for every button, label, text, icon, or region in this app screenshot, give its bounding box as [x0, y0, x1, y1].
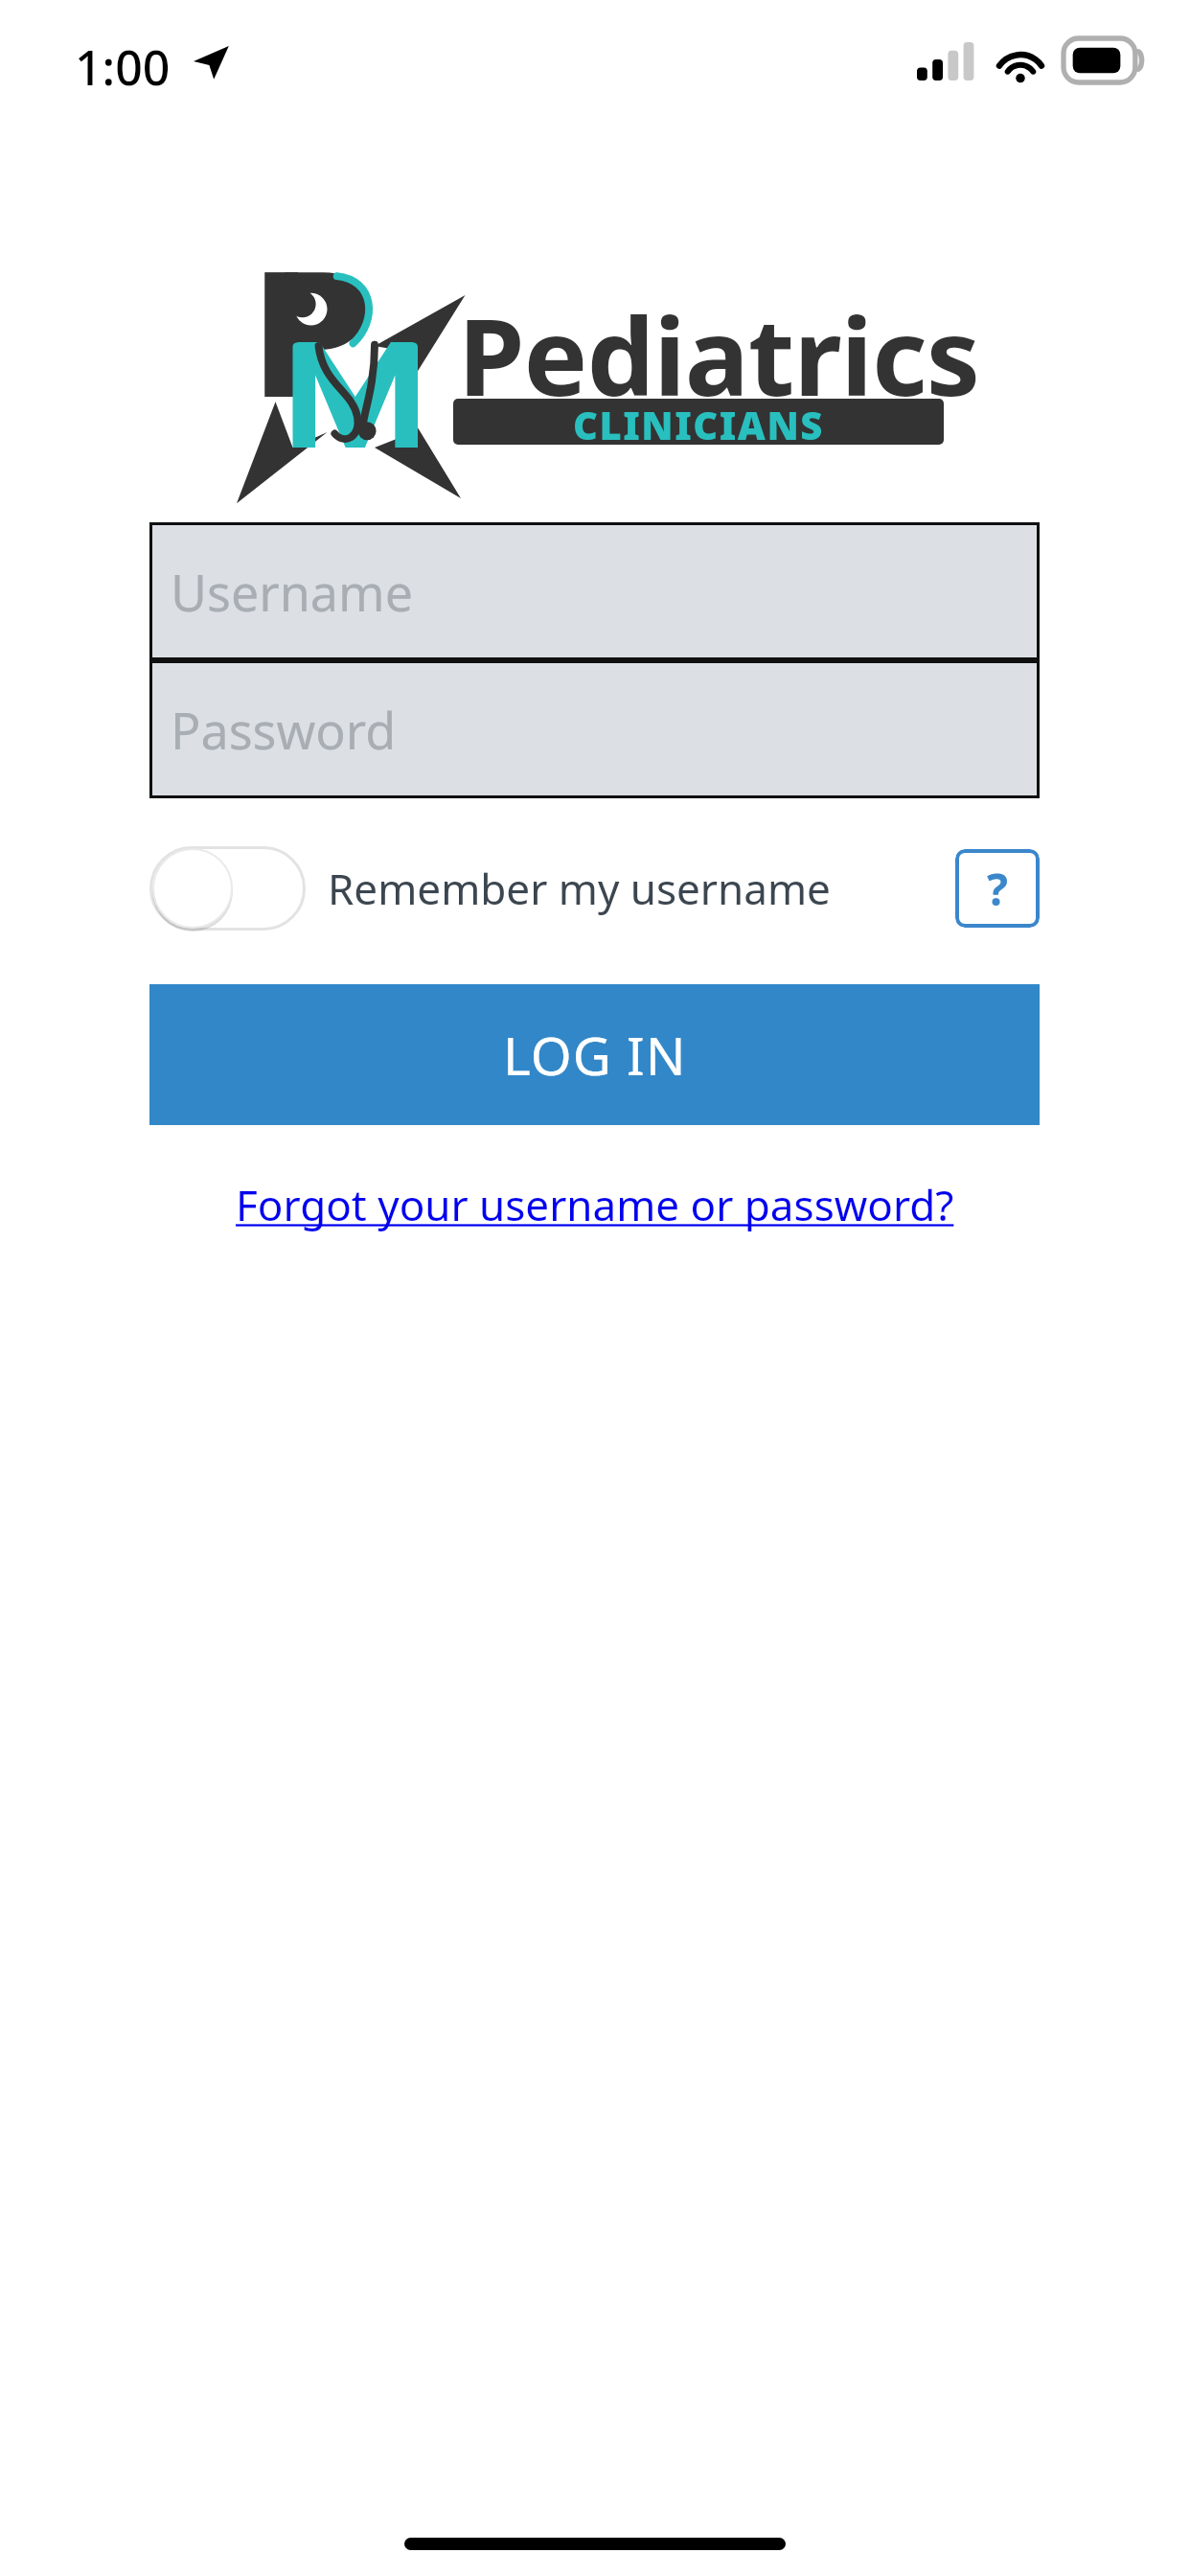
staticText: LOG IN: [503, 1019, 687, 1091]
button[interactable]: Password: [149, 660, 1040, 798]
button[interactable]: Username: [149, 522, 1040, 660]
button[interactable]: LOG IN: [149, 984, 1040, 1125]
staticText: Password: [171, 696, 397, 764]
button[interactable]: Forgot your username or password?: [0, 1171, 1190, 1238]
staticText: 1:00: [75, 34, 171, 100]
staticText: Remember my username: [328, 860, 831, 917]
staticText: CLINICIANS: [573, 399, 824, 445]
staticText: ?: [987, 859, 1008, 919]
staticText: Pediatrics: [458, 281, 979, 427]
staticText: Username: [171, 558, 413, 626]
button[interactable]: Remember my username toggle: [149, 846, 306, 931]
staticText: Forgot your username or password?: [236, 1176, 954, 1233]
button[interactable]: Help: [955, 849, 1040, 928]
